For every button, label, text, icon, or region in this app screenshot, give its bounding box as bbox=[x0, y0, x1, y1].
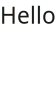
staticText: Hello bbox=[0, 0, 56, 30]
